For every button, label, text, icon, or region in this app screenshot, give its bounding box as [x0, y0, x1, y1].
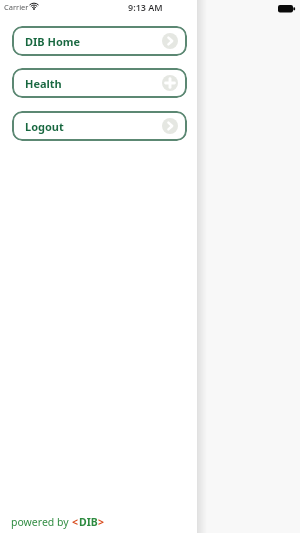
staticText: >: [98, 515, 105, 529]
button[interactable]: Health: [12, 68, 187, 98]
staticText: 9:13 AM: [128, 1, 163, 13]
button[interactable]: Logout: [12, 111, 187, 141]
button[interactable]: powered by: [11, 515, 105, 529]
staticText: powered by: [11, 515, 72, 529]
staticText: Health: [25, 76, 62, 91]
staticText: <: [72, 515, 79, 529]
staticText: DIB Home: [25, 34, 81, 49]
staticText: DIB: [79, 515, 98, 529]
staticText: Logout: [25, 119, 64, 134]
button[interactable]: DIB Home: [12, 26, 187, 56]
staticText: Carrier: [4, 2, 29, 12]
